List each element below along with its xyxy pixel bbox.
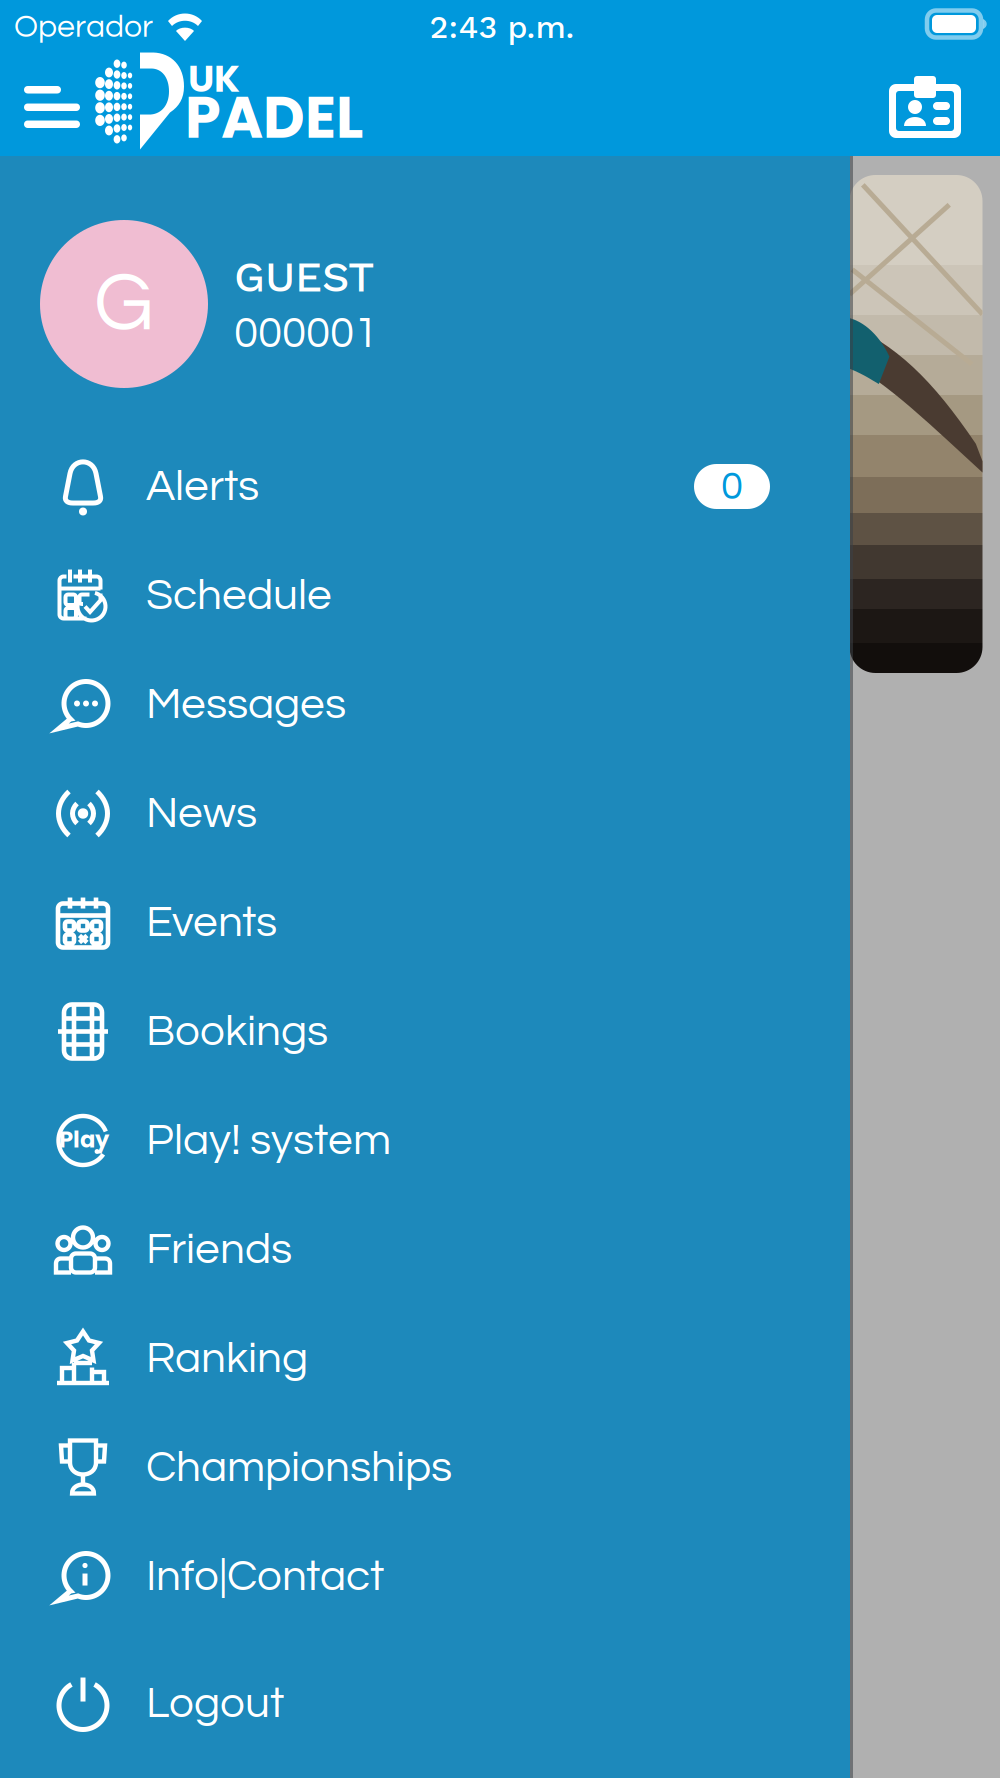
button[interactable]: Play <box>0 1086 850 1195</box>
staticText: 000001 <box>234 311 378 356</box>
staticText: Info|Contact <box>146 1554 384 1599</box>
button[interactable]: Open menu <box>8 58 96 156</box>
staticText: PADEL <box>185 77 363 158</box>
staticText: 0 <box>721 466 743 507</box>
button[interactable]: Logout <box>0 1649 850 1758</box>
staticText: Operador <box>14 10 153 43</box>
button[interactable]: Messages <box>0 650 850 759</box>
button[interactable]: Member card <box>876 58 974 156</box>
staticText: UK <box>188 52 240 105</box>
staticText: News <box>146 791 257 836</box>
staticText: Events <box>146 900 277 945</box>
staticText: Alerts <box>146 464 259 509</box>
staticText: Messages <box>146 682 346 727</box>
staticText: Play! system <box>146 1118 391 1163</box>
staticText: GUEST <box>234 252 374 302</box>
staticText: 2:43 p.m. <box>429 8 574 46</box>
staticText: Championships <box>146 1445 452 1490</box>
staticText: Play <box>59 1124 109 1155</box>
button[interactable]: Friends <box>0 1195 850 1304</box>
staticText: Logout <box>146 1681 284 1726</box>
button[interactable]: Alerts <box>0 432 850 541</box>
button[interactable]: Championships <box>0 1413 850 1522</box>
button[interactable]: Bookings <box>0 977 850 1086</box>
button[interactable]: Schedule <box>0 541 850 650</box>
button[interactable]: News <box>0 759 850 868</box>
staticText: Bookings <box>146 1009 328 1054</box>
staticText: Friends <box>146 1227 292 1272</box>
staticText: G <box>94 261 154 346</box>
button[interactable]: Info|Contact <box>0 1522 850 1631</box>
button[interactable]: Events <box>0 868 850 977</box>
staticText: Ranking <box>146 1336 308 1381</box>
staticText: Schedule <box>146 573 332 618</box>
button[interactable]: Ranking <box>0 1304 850 1413</box>
